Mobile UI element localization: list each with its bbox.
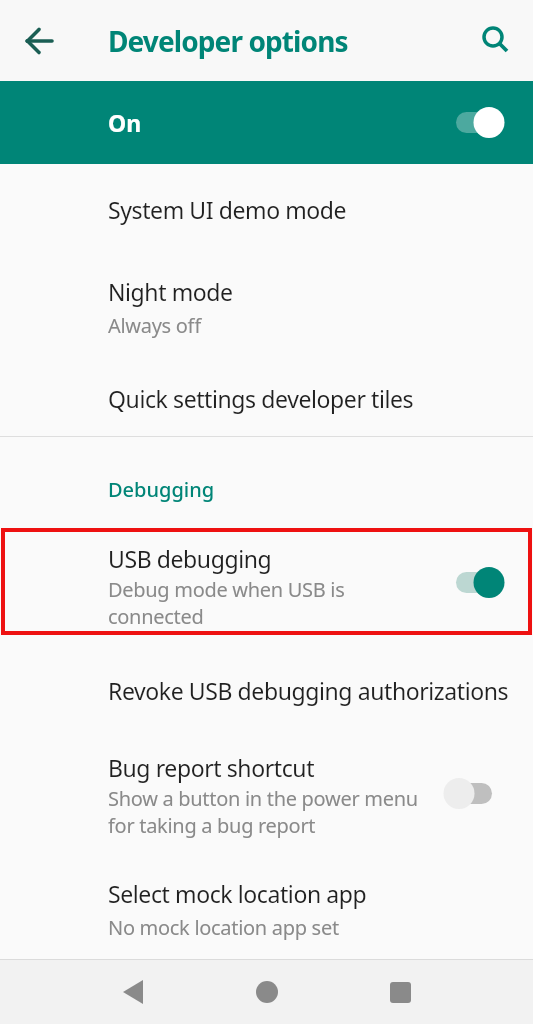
staticText: Bug report shortcut — [108, 752, 315, 783]
staticText: Developer options — [108, 22, 348, 60]
staticText: Revoke USB debugging authorizations — [108, 675, 509, 706]
button[interactable] — [477, 13, 533, 69]
button[interactable]: Select mock location app — [0, 848, 533, 954]
staticText: On — [108, 107, 142, 138]
button[interactable] — [12, 13, 68, 69]
button[interactable]: On — [0, 81, 533, 164]
staticText: Quick settings developer tiles — [108, 383, 414, 414]
button[interactable]: USB debugging — [0, 517, 533, 647]
staticText: Debugging — [108, 476, 215, 503]
button[interactable] — [380, 972, 420, 1012]
staticText: Debug mode when USB is — [108, 576, 345, 603]
button[interactable] — [113, 972, 153, 1012]
staticText: for taking a bug report — [108, 812, 316, 839]
staticText: No mock location app set — [108, 914, 339, 941]
staticText: connected — [108, 603, 204, 630]
staticText: Show a button in the power menu — [108, 785, 418, 812]
button[interactable]: Night mode — [0, 247, 533, 353]
staticText: System UI demo mode — [108, 194, 347, 225]
staticText: Select mock location app — [108, 878, 367, 909]
staticText: Night mode — [108, 276, 233, 307]
staticText: Always off — [108, 312, 202, 339]
staticText: USB debugging — [108, 543, 272, 574]
button[interactable]: Quick settings developer tiles — [0, 353, 533, 436]
button[interactable]: Bug report shortcut — [0, 730, 533, 848]
button[interactable] — [247, 972, 287, 1012]
button[interactable]: System UI demo mode — [0, 164, 533, 247]
button[interactable]: Revoke USB debugging authorizations — [0, 647, 533, 730]
